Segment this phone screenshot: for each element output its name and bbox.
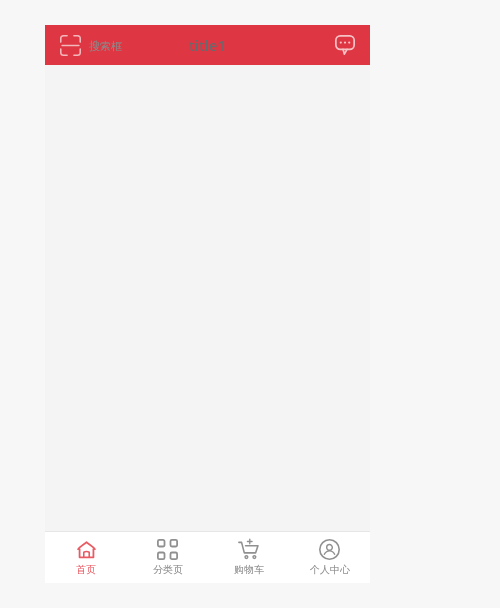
button[interactable]: 购物车 — [208, 532, 289, 583]
staticText: 购物车 — [234, 563, 264, 576]
staticText: 个人中心 — [310, 563, 350, 576]
staticText: 搜索框 — [89, 39, 122, 53]
staticText: title1 — [189, 35, 226, 55]
button[interactable]: Messages — [332, 32, 358, 58]
button[interactable]: Scan — [58, 31, 124, 60]
button[interactable]: 个人中心 — [289, 532, 370, 583]
button[interactable]: 首页 — [45, 532, 127, 583]
staticText: 首页 — [76, 563, 96, 576]
button[interactable]: 分类页 — [127, 532, 208, 583]
staticText: 分类页 — [153, 563, 183, 576]
other: Scan — [60, 35, 81, 56]
